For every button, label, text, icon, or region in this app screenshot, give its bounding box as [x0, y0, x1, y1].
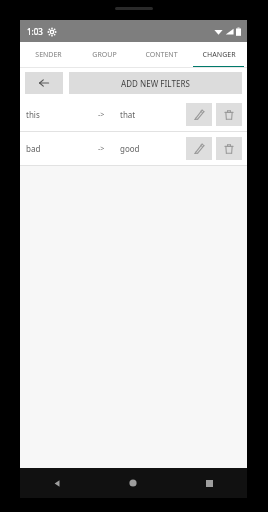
- button[interactable]: Delete: [216, 103, 242, 126]
- button[interactable]: Edit: [186, 137, 212, 160]
- staticText: GROUP: [92, 50, 117, 60]
- staticText: 1:03: [27, 26, 43, 37]
- button[interactable]: CONTENT: [133, 42, 190, 68]
- button[interactable]: Recent apps: [171, 468, 247, 498]
- staticText: that: [120, 109, 186, 120]
- staticText: bad: [26, 143, 98, 154]
- button[interactable]: Home: [95, 468, 171, 498]
- staticText: ->: [98, 110, 120, 120]
- button[interactable]: SENDER: [20, 42, 76, 68]
- button[interactable]: ADD NEW FILTERS: [69, 72, 242, 94]
- staticText: this: [26, 109, 98, 120]
- staticText: SENDER: [35, 50, 62, 60]
- button[interactable]: GROUP: [76, 42, 133, 68]
- staticText: CHANGER: [202, 50, 236, 60]
- button[interactable]: Edit: [186, 103, 212, 126]
- staticText: CONTENT: [145, 50, 178, 60]
- button[interactable]: Back: [20, 468, 95, 498]
- staticText: ->: [98, 144, 120, 154]
- button[interactable]: Back: [25, 72, 63, 94]
- button[interactable]: Delete: [216, 137, 242, 160]
- staticText: good: [120, 143, 186, 154]
- button[interactable]: CHANGER: [190, 42, 247, 68]
- staticText: ADD NEW FILTERS: [121, 78, 190, 89]
